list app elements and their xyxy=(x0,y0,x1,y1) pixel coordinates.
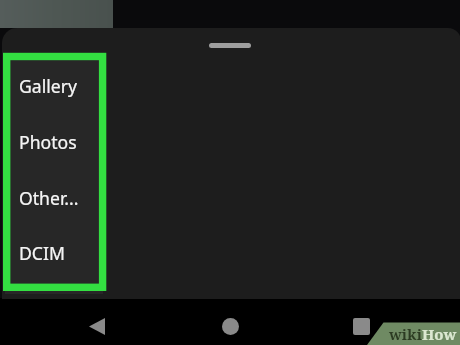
staticText: Photos xyxy=(19,130,77,154)
staticText: wiki xyxy=(389,324,422,344)
button[interactable]: Photos xyxy=(5,114,103,170)
button[interactable]: Other... xyxy=(5,170,103,226)
button[interactable]: Recent apps xyxy=(345,310,377,342)
button[interactable]: Home xyxy=(214,310,246,342)
staticText: How xyxy=(422,324,457,344)
staticText: Gallery xyxy=(19,74,77,98)
button[interactable]: DCIM xyxy=(5,225,103,281)
button[interactable]: Back xyxy=(81,310,113,342)
staticText: DCIM xyxy=(19,241,65,265)
button[interactable]: Gallery xyxy=(5,58,103,114)
staticText: Other... xyxy=(19,186,79,210)
